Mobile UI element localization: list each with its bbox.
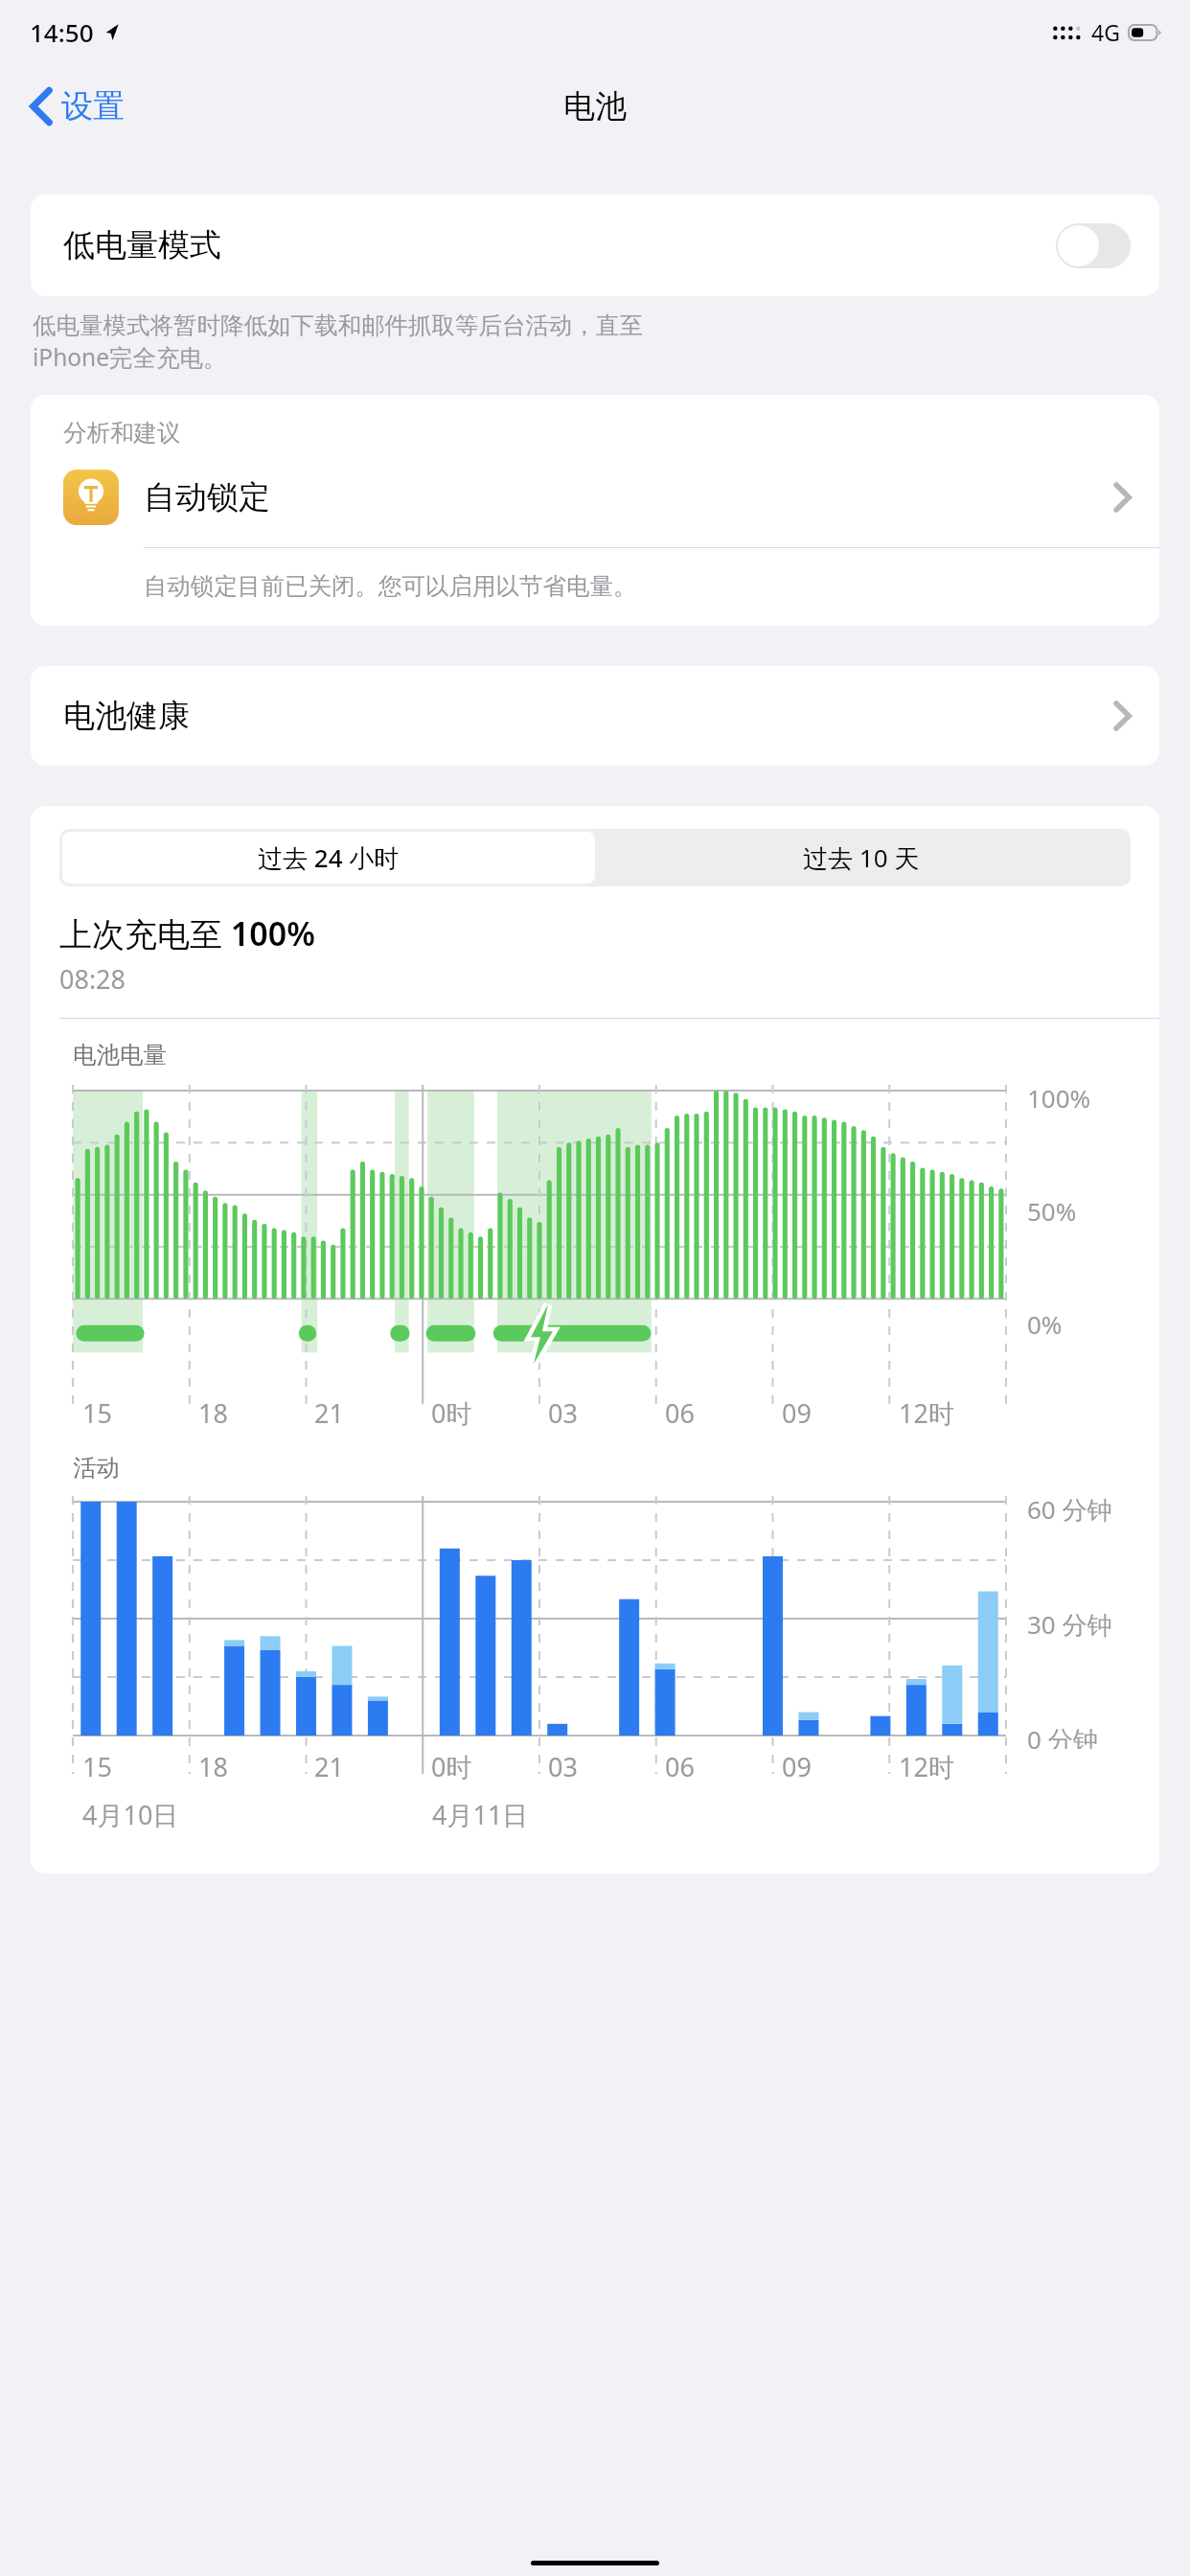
staticText: 电池电量 <box>73 1040 167 1069</box>
staticText: 30 分钟 <box>1027 1607 1112 1642</box>
staticText: 06 <box>665 1395 695 1431</box>
button[interactable]: 自动锁定 <box>31 448 1159 547</box>
staticText: 03 <box>548 1749 578 1784</box>
staticText: 分析和建议 <box>63 418 181 448</box>
staticText: 设置 <box>61 86 125 126</box>
staticText: 12时 <box>899 1749 954 1784</box>
staticText: 08:28 <box>59 961 126 997</box>
staticText: 03 <box>548 1395 578 1431</box>
staticText: 电池 <box>563 86 627 126</box>
staticText: 18 <box>198 1395 228 1431</box>
staticText: 4G <box>1091 17 1120 47</box>
staticText: 4月11日 <box>432 1797 529 1832</box>
staticText: 100% <box>1027 1081 1091 1115</box>
button[interactable]: 低电量模式开关 <box>1056 223 1131 268</box>
button[interactable]: 过去 10 天 <box>595 832 1128 884</box>
staticText: 14:50 <box>30 15 94 49</box>
staticText: 4月10日 <box>82 1797 179 1832</box>
staticText: 21 <box>314 1749 344 1784</box>
staticText: 0% <box>1027 1307 1063 1341</box>
button[interactable]: 设置 <box>25 77 130 136</box>
staticText: 21 <box>314 1395 344 1431</box>
staticText: 15 <box>82 1749 112 1784</box>
staticText: 过去 10 天 <box>803 840 920 875</box>
staticText: 0时 <box>431 1395 472 1431</box>
staticText: 18 <box>198 1749 228 1784</box>
staticText: 自动锁定目前已关闭。您可以启用以节省电量。 <box>144 571 637 601</box>
staticText: 50% <box>1027 1194 1077 1228</box>
staticText: 活动 <box>73 1453 120 1483</box>
staticText: 电池健康 <box>63 696 190 736</box>
staticText: 自动锁定 <box>144 477 270 517</box>
staticText: 低电量模式 <box>63 225 221 265</box>
button[interactable]: 低电量模式 <box>31 195 1159 296</box>
staticText: 06 <box>665 1749 695 1784</box>
button[interactable]: 电池健康 <box>31 666 1159 766</box>
staticText: 0时 <box>431 1749 472 1784</box>
staticText: 60 分钟 <box>1027 1492 1112 1527</box>
button[interactable]: 过去 24 小时 <box>62 832 595 884</box>
staticText: 低电量模式将暂时降低如下载和邮件抓取等后台活动，直至 iPhone完全充电。 <box>33 310 643 373</box>
staticText: 15 <box>82 1395 112 1431</box>
staticText: 过去 24 小时 <box>258 840 400 875</box>
staticText: 09 <box>782 1395 812 1431</box>
staticText: 12时 <box>899 1395 954 1431</box>
staticText: 09 <box>782 1749 812 1784</box>
staticText: 上次充电至 100% <box>59 911 315 955</box>
staticText: 0 分钟 <box>1027 1722 1098 1749</box>
